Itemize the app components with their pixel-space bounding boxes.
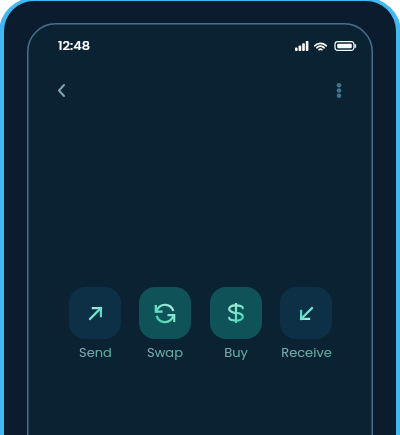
button[interactable]: Send [69,287,121,361]
button[interactable]: More options [321,72,357,108]
button[interactable]: Buy [210,287,262,361]
staticText: Swap [147,343,183,361]
button[interactable]: Swap [139,287,191,361]
staticText: Send [79,343,112,361]
button[interactable]: Back [43,72,79,108]
staticText: Receive [281,343,332,361]
button[interactable]: Receive [280,287,332,361]
staticText: Buy [224,343,248,361]
staticText: 12:48 [58,36,90,54]
